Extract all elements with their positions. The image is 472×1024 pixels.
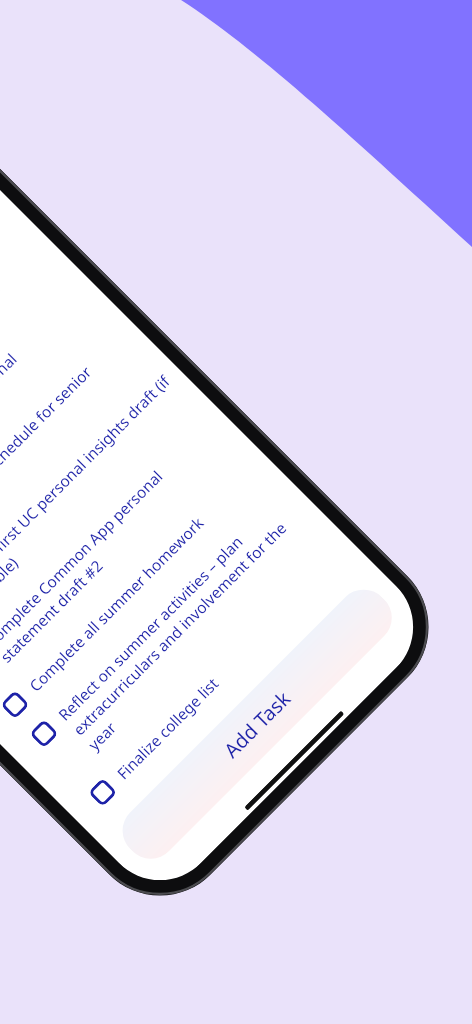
- button[interactable]: Complete first UC personal insights draf…: [0, 353, 207, 674]
- button[interactable]: Research colleges and majors if you have…: [0, 221, 75, 542]
- staticText: Complete first UC personal insights draf…: [0, 370, 189, 623]
- staticText: Finalize college list: [112, 672, 223, 783]
- staticText: Plan your course schedule for senior yea…: [0, 361, 111, 579]
- button[interactable]: Complete Common App personal statement d…: [0, 396, 250, 717]
- staticText: Research colleges and majors if you have…: [0, 277, 19, 491]
- button[interactable]: Plan your course schedule for senior yea…: [0, 309, 163, 630]
- staticText: Brainstorm topics for personal statement…: [0, 348, 36, 535]
- button[interactable]: Complete all summer homework: [0, 440, 279, 746]
- button[interactable]: Brainstorm topics for personal statement…: [0, 265, 119, 586]
- staticText: Complete all summer homework: [24, 512, 208, 695]
- button[interactable]: Finalize college list: [61, 528, 367, 834]
- button[interactable]: Reflect on summer activities – plan extr…: [2, 469, 338, 805]
- staticText: Reflect on summer activities – plan extr…: [53, 502, 306, 754]
- button[interactable]: Add Task: [112, 579, 402, 869]
- staticText: Complete Common App personal statement d…: [0, 465, 182, 666]
- staticText: Add Task: [218, 685, 296, 763]
